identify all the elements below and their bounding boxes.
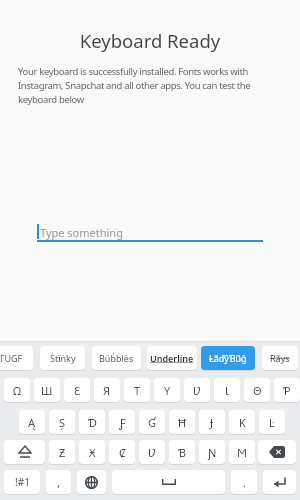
staticText: Я: [103, 383, 111, 398]
button[interactable]: .: [231, 470, 257, 494]
staticText: Underline: [150, 352, 194, 364]
staticText: Ɠ: [148, 415, 157, 430]
button[interactable]: Ʋ: [139, 440, 165, 464]
button[interactable]: Ɓ: [169, 440, 195, 464]
staticText: Θ: [253, 383, 262, 398]
staticText: Ɲ: [208, 445, 217, 460]
staticText: Ṡtïṅky: [50, 352, 76, 364]
staticText: Ȼ: [119, 445, 126, 460]
button[interactable]: Τ: [124, 378, 150, 402]
staticText: Ʋ: [193, 383, 202, 398]
staticText: Ω: [13, 383, 21, 398]
button[interactable]: Type something: [37, 222, 263, 244]
button[interactable]: !#1: [4, 470, 40, 494]
button[interactable]: Büḃḃlës: [92, 346, 141, 370]
button[interactable]: Underline: [147, 346, 197, 370]
button[interactable]: Ƙ: [229, 410, 255, 434]
button[interactable]: Ƒ: [109, 410, 135, 434]
staticText: Rãys: [270, 352, 290, 364]
staticText: Ƴ: [164, 383, 171, 398]
staticText: .: [243, 475, 246, 490]
button[interactable]: ΓUGF: [0, 346, 33, 370]
button[interactable]: ⱠãďŷƁũĝ: [201, 346, 255, 370]
staticText: ΓUGF: [0, 352, 23, 364]
button[interactable]: [258, 440, 296, 464]
button[interactable]: Ϻ: [229, 440, 255, 464]
button[interactable]: Ŀ: [259, 410, 285, 434]
staticText: Ӿ: [89, 445, 96, 460]
button[interactable]: Ƶ: [49, 440, 75, 464]
staticText: Ʋ: [148, 445, 157, 460]
button[interactable]: ,: [46, 470, 71, 494]
staticText: Ƙ: [239, 415, 246, 430]
staticText: Τ: [134, 383, 141, 398]
staticText: Ƒ: [119, 415, 126, 430]
button[interactable]: Ɗ: [79, 410, 105, 434]
staticText: Ħ: [178, 415, 187, 430]
staticText: Büḃḃlës: [99, 352, 134, 364]
staticText: ⱠãďŷƁũĝ: [209, 352, 247, 364]
staticText: Ш: [41, 383, 53, 398]
button[interactable]: Я: [94, 378, 120, 402]
button[interactable]: Rãys: [262, 346, 298, 370]
staticText: Keyboard Ready: [0, 28, 300, 53]
staticText: Ŀ: [269, 415, 275, 430]
staticText: Ɓ: [178, 445, 187, 460]
staticText: Ɛ: [74, 383, 81, 398]
button[interactable]: Θ: [244, 378, 270, 402]
button[interactable]: Ƴ: [154, 378, 180, 402]
button[interactable]: Ӿ: [79, 440, 105, 464]
staticText: Ɩ: [225, 383, 229, 398]
button[interactable]: [263, 470, 296, 494]
button[interactable]: [112, 470, 225, 494]
staticText: Type something: [40, 225, 123, 240]
staticText: Ɗ: [88, 415, 97, 430]
button[interactable]: Ʋ: [184, 378, 210, 402]
button[interactable]: Ą: [19, 410, 45, 434]
staticText: Ș: [59, 415, 66, 430]
button[interactable]: Ɛ: [64, 378, 90, 402]
button[interactable]: Ɠ: [139, 410, 165, 434]
button[interactable]: Ȼ: [109, 440, 135, 464]
button[interactable]: Ƥ: [274, 378, 300, 402]
button[interactable]: Ș: [49, 410, 75, 434]
button[interactable]: Ɩ: [214, 378, 240, 402]
button[interactable]: Ṡtïṅky: [40, 346, 85, 370]
button[interactable]: [77, 470, 106, 494]
button[interactable]: Ш: [34, 378, 60, 402]
staticText: Ą: [28, 415, 36, 430]
staticText: Ƥ: [283, 383, 291, 398]
button[interactable]: Ɉ: [199, 410, 225, 434]
button[interactable]: Ω: [4, 378, 30, 402]
staticText: Your keyboard is successfully installed.…: [18, 65, 251, 106]
staticText: !#1: [15, 475, 30, 489]
staticText: Ɉ: [210, 415, 214, 430]
button[interactable]: Ɲ: [199, 440, 225, 464]
button[interactable]: Ħ: [169, 410, 195, 434]
button[interactable]: [4, 440, 45, 464]
staticText: ,: [57, 475, 60, 490]
staticText: Ϻ: [237, 445, 247, 460]
staticText: Ƶ: [59, 445, 66, 460]
